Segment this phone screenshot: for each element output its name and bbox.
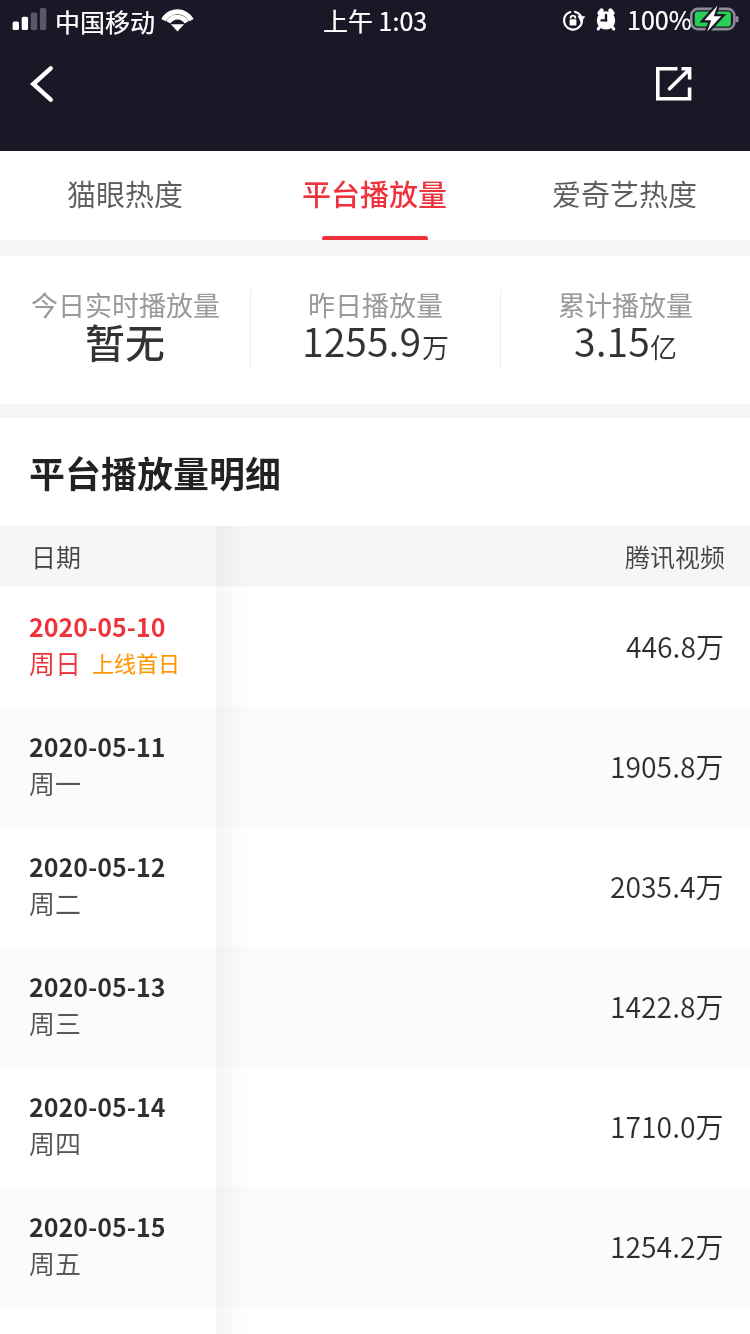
staticText: 亿 bbox=[650, 327, 677, 366]
button[interactable]: 猫眼热度 bbox=[0, 151, 250, 240]
button[interactable]: 爱奇艺热度 bbox=[500, 151, 750, 240]
button[interactable]: 2020-05-13 bbox=[0, 946, 750, 1066]
staticText: 1905.8万 bbox=[610, 746, 724, 787]
staticText: 平台播放量明细 bbox=[29, 446, 282, 498]
staticText: 爱奇艺热度 bbox=[552, 172, 698, 214]
staticText: 日期 bbox=[31, 538, 82, 574]
staticText: 猫眼热度 bbox=[67, 172, 184, 214]
staticText: 周一 bbox=[29, 764, 82, 802]
staticText: 2020-05-11 bbox=[29, 728, 166, 764]
button[interactable]: 2020-05-10 bbox=[0, 586, 750, 706]
staticText: 暂无 bbox=[85, 312, 165, 370]
staticText: 2020-05-12 bbox=[29, 848, 166, 884]
button[interactable]: 平台播放量 bbox=[250, 151, 500, 240]
staticText: 3.15 bbox=[574, 312, 650, 368]
staticText: 今日实时播放量 bbox=[31, 285, 220, 324]
staticText: 1255.9 bbox=[302, 312, 422, 368]
staticText: 周三 bbox=[29, 1004, 82, 1042]
button[interactable]: 2020-05-12 bbox=[0, 826, 750, 946]
staticText: 2035.4万 bbox=[610, 866, 724, 907]
staticText: 2020-05-10 bbox=[29, 608, 166, 644]
button[interactable]: 2020-05-15 bbox=[0, 1186, 750, 1306]
staticText: 中国移动 bbox=[55, 3, 156, 39]
staticText: 100% bbox=[627, 1, 692, 37]
staticText: 周五 bbox=[29, 1244, 82, 1282]
staticText: 累计播放量 bbox=[558, 285, 693, 324]
staticText: 446.8万 bbox=[626, 626, 724, 667]
button[interactable]: Share bbox=[626, 51, 722, 117]
staticText: 上午 1:03 bbox=[323, 2, 428, 38]
button[interactable]: 2020-05-14 bbox=[0, 1066, 750, 1186]
staticText: 2020-05-15 bbox=[29, 1208, 166, 1244]
button[interactable]: 2020-05-11 bbox=[0, 706, 750, 826]
staticText: 1422.8万 bbox=[610, 986, 724, 1027]
staticText: 万 bbox=[422, 327, 449, 366]
staticText: 1254.2万 bbox=[610, 1226, 724, 1267]
staticText: 周日 bbox=[29, 644, 82, 682]
staticText: 腾讯视频 bbox=[625, 538, 726, 574]
staticText: 昨日播放量 bbox=[308, 285, 443, 324]
button[interactable]: Back bbox=[0, 51, 84, 117]
staticText: 2020-05-13 bbox=[29, 968, 166, 1004]
staticText: 平台播放量 bbox=[302, 172, 448, 214]
staticText: 1710.0万 bbox=[610, 1106, 724, 1147]
staticText: 2020-05-14 bbox=[29, 1088, 166, 1124]
staticText: 周四 bbox=[29, 1124, 82, 1162]
staticText: 上线首日 bbox=[92, 646, 181, 678]
staticText: 周二 bbox=[29, 884, 82, 922]
